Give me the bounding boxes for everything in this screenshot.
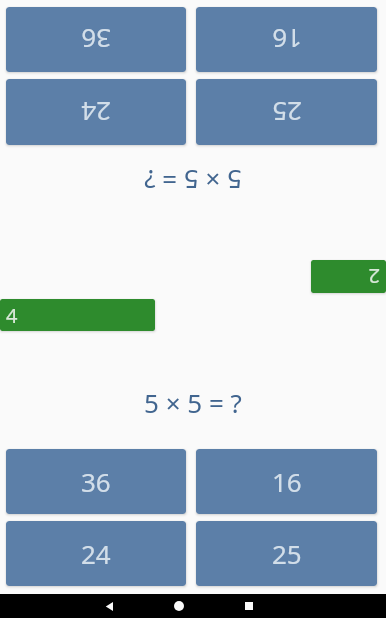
staticText: 2 bbox=[368, 263, 380, 290]
button[interactable]: Home bbox=[167, 594, 191, 618]
button[interactable]: Recents bbox=[237, 594, 261, 618]
staticText: 5 × 5 = ? bbox=[0, 163, 386, 198]
button[interactable]: 24 bbox=[6, 79, 186, 145]
staticText: 25 bbox=[272, 95, 302, 130]
button[interactable]: 24 bbox=[6, 521, 186, 586]
button[interactable]: 16 bbox=[196, 449, 377, 514]
staticText: 25 bbox=[272, 536, 302, 571]
staticText: 24 bbox=[81, 95, 111, 130]
staticText: 36 bbox=[81, 464, 111, 499]
button[interactable]: 36 bbox=[6, 7, 186, 72]
button[interactable]: 25 bbox=[196, 521, 377, 586]
button[interactable]: 16 bbox=[196, 7, 377, 72]
button[interactable]: Back bbox=[97, 594, 121, 618]
button[interactable]: 4 bbox=[0, 299, 155, 331]
staticText: 5 × 5 = ? bbox=[0, 385, 386, 420]
staticText: 36 bbox=[81, 22, 111, 57]
staticText: 16 bbox=[272, 22, 302, 57]
button[interactable]: 2 bbox=[311, 260, 386, 293]
staticText: 16 bbox=[272, 464, 302, 499]
staticText: 4 bbox=[6, 302, 18, 329]
button[interactable]: 25 bbox=[196, 79, 377, 145]
staticText: 24 bbox=[81, 536, 111, 571]
button[interactable]: 36 bbox=[6, 449, 186, 514]
